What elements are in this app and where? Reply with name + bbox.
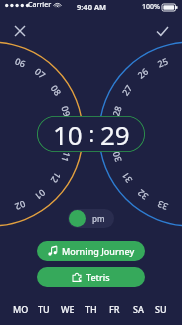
staticText: TH <box>85 303 97 315</box>
button[interactable]: Tetris <box>37 267 145 287</box>
staticText: MO <box>13 303 29 315</box>
staticText: 30 <box>109 150 124 164</box>
button[interactable]: 10 <box>37 116 145 152</box>
staticText: 10 <box>53 117 83 152</box>
staticText: 9:40 AM <box>77 2 106 12</box>
staticText: 09 <box>59 104 74 118</box>
button[interactable]: SU <box>151 301 171 317</box>
button[interactable]: Morning Journey <box>37 241 145 261</box>
staticText: 33 <box>155 198 170 214</box>
button[interactable]: TU <box>34 301 54 317</box>
staticText: 26 <box>134 65 150 81</box>
button[interactable]: Confirm <box>149 18 175 44</box>
staticText: 32 <box>134 187 150 203</box>
button[interactable]: pm <box>68 209 114 228</box>
staticText: TU <box>38 303 50 315</box>
staticText: 02 <box>13 198 28 214</box>
staticText: WE <box>61 303 75 315</box>
staticText: 28 <box>109 104 124 118</box>
staticText: pm <box>92 213 105 224</box>
staticText: 27 <box>118 82 135 98</box>
button[interactable]: SA <box>128 301 148 317</box>
button[interactable]: TH <box>81 301 101 317</box>
button[interactable]: MO <box>11 301 31 317</box>
button[interactable]: WE <box>58 301 78 317</box>
staticText: FR <box>109 303 120 315</box>
button[interactable]: FR <box>104 301 124 317</box>
staticText: 31 <box>118 170 135 186</box>
button[interactable]: Cancel <box>7 18 33 44</box>
staticText: SU <box>155 303 167 315</box>
staticText: 12 <box>48 170 65 186</box>
staticText: 07 <box>32 65 48 81</box>
staticText: 06 <box>13 54 28 70</box>
staticText: 29 <box>100 117 130 152</box>
staticText: 25 <box>155 54 170 70</box>
staticText: 11 <box>59 150 74 164</box>
staticText: SA <box>133 303 144 315</box>
staticText: Tetris <box>86 271 110 283</box>
staticText: 08 <box>48 82 65 98</box>
staticText: : <box>83 120 100 149</box>
staticText: Carrier <box>28 0 52 10</box>
staticText: 100% <box>142 2 160 12</box>
staticText: Morning Journey <box>62 245 135 257</box>
staticText: 01 <box>32 187 48 203</box>
